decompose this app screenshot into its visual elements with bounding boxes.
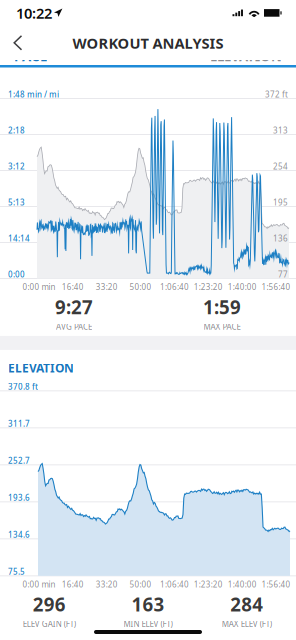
staticText: 77 xyxy=(278,269,288,280)
staticText: 10:22 xyxy=(16,3,52,23)
staticText: 163 xyxy=(131,592,164,617)
staticText: 195 xyxy=(273,197,288,208)
staticText: ELEV GAIN (FT) xyxy=(23,619,76,629)
staticText: 1:56:40 xyxy=(262,579,291,590)
staticText: 75.5 xyxy=(8,566,25,577)
staticText: MAX ELEV (FT) xyxy=(222,619,272,629)
button[interactable]: Back xyxy=(0,26,39,60)
staticText: 1:56:40 xyxy=(262,282,291,292)
staticText: 252.7 xyxy=(8,455,30,466)
staticText: 311.7 xyxy=(8,418,30,429)
staticText: 1:40:00 xyxy=(228,579,257,590)
staticText: 50:00 xyxy=(130,282,152,292)
staticText: 136 xyxy=(273,233,288,244)
staticText: 9:27 xyxy=(55,294,93,319)
staticText: AVG PACE xyxy=(56,321,92,332)
staticText: 3:12 xyxy=(8,161,25,172)
staticText: 372 ft xyxy=(265,89,288,100)
staticText: 134.6 xyxy=(8,529,30,540)
staticText: PACE xyxy=(14,47,47,65)
staticText: 1:59 xyxy=(203,294,241,319)
staticText: 50:00 xyxy=(130,579,152,590)
staticText: 1:23:20 xyxy=(194,282,223,292)
staticText: ELEVATION xyxy=(210,47,282,65)
staticText: 254 xyxy=(273,161,288,172)
staticText: ELEVATION xyxy=(8,360,74,376)
staticText: 193.6 xyxy=(8,492,30,503)
staticText: 284 xyxy=(230,592,263,617)
staticText: WORKOUT ANALYSIS xyxy=(72,33,223,53)
staticText: 16:40 xyxy=(62,579,84,590)
staticText: 0:00 min xyxy=(22,579,55,590)
staticText: MAX PACE xyxy=(203,321,240,332)
staticText: 296 xyxy=(33,592,66,617)
staticText: 2:18 xyxy=(8,125,25,136)
staticText: 1:06:40 xyxy=(160,282,189,292)
staticText: 1:06:40 xyxy=(160,579,189,590)
staticText: 1:23:20 xyxy=(194,579,223,590)
staticText: 33:20 xyxy=(96,282,118,292)
staticText: 5:13 xyxy=(8,197,25,208)
staticText: 16:40 xyxy=(62,282,84,292)
staticText: 370.8 ft xyxy=(8,381,38,392)
staticText: MIN ELEV (FT) xyxy=(123,619,172,629)
staticText: 0:00 min xyxy=(22,282,55,292)
staticText: 1:40:00 xyxy=(228,282,257,292)
staticText: 313 xyxy=(273,125,288,136)
staticText: 0:00 xyxy=(8,269,25,280)
staticText: 33:20 xyxy=(96,579,118,590)
staticText: 14:14 xyxy=(8,233,30,244)
staticText: 1:48 min / mi xyxy=(8,89,59,100)
